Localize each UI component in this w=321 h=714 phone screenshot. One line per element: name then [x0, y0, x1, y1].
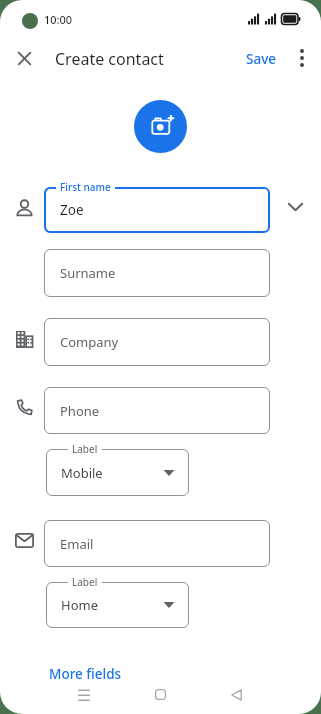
staticText: Create contact	[55, 48, 164, 69]
staticText: 10:00	[44, 12, 73, 27]
button[interactable]: Save	[238, 46, 284, 71]
staticText: Home	[61, 596, 98, 614]
button[interactable]: Mobile	[46, 449, 189, 496]
staticText: First name	[60, 180, 111, 194]
button[interactable]: Email	[44, 520, 270, 567]
button[interactable]: Company	[44, 318, 270, 366]
button[interactable]: More fields	[44, 662, 134, 686]
button[interactable]	[143, 677, 178, 712]
button[interactable]	[12, 46, 37, 71]
button[interactable]	[134, 100, 187, 153]
button[interactable]: Surname	[44, 249, 270, 297]
staticText: More fields	[49, 665, 122, 683]
staticText: Mobile	[61, 464, 103, 482]
staticText: Label	[72, 575, 98, 589]
staticText: Company	[60, 333, 119, 351]
button[interactable]	[219, 677, 254, 712]
button[interactable]	[66, 677, 101, 712]
button[interactable]	[290, 46, 314, 70]
staticText: Phone	[60, 402, 100, 420]
staticText: Label	[72, 442, 98, 456]
button[interactable]: Home	[46, 582, 189, 628]
button[interactable]	[283, 194, 308, 219]
button[interactable]: Phone	[44, 387, 270, 434]
button[interactable]: Zoe	[44, 187, 270, 233]
staticText: Zoe	[60, 201, 84, 219]
staticText: Surname	[60, 264, 116, 282]
staticText: Email	[60, 535, 94, 553]
staticText: Save	[246, 50, 277, 68]
